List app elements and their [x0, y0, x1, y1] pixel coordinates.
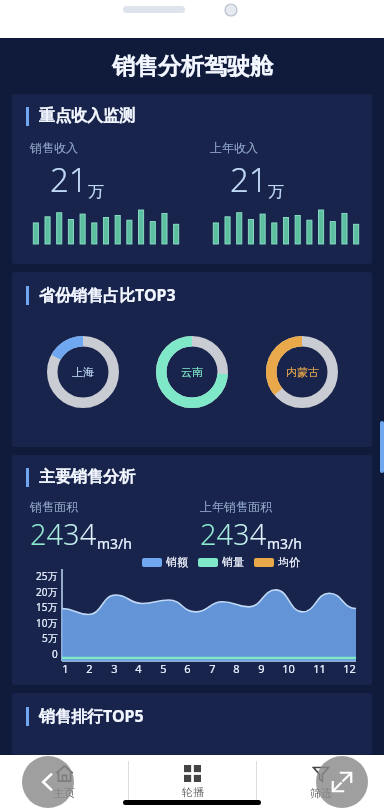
staticText: 21 [50, 157, 88, 202]
staticText: 筛选 [310, 786, 332, 800]
staticText: 万 [268, 182, 284, 202]
staticText: 省份销售占比TOP3 [39, 284, 176, 306]
staticText: 2434 [200, 514, 267, 553]
staticText: 销售排行TOP5 [39, 705, 144, 727]
staticText: 轮播 [182, 785, 204, 799]
button[interactable]: 上海 [44, 333, 122, 411]
staticText: 上年收入 [210, 140, 258, 155]
staticText: 9 [258, 661, 265, 676]
staticText: 上年销售面积 [200, 499, 272, 514]
staticText: 10万 [36, 616, 58, 630]
staticText: 7 [209, 661, 216, 676]
staticText: 内蒙古 [286, 365, 319, 379]
staticText: 15万 [36, 600, 58, 614]
staticText: 6 [184, 661, 191, 676]
staticText: 25万 [36, 569, 58, 583]
staticText: 2 [86, 661, 93, 676]
staticText: 主页 [53, 786, 75, 800]
staticText: m3/h [97, 534, 132, 553]
staticText: 万 [88, 182, 104, 202]
staticText: 11 [313, 661, 326, 676]
button[interactable]: 轮播 [129, 755, 256, 809]
button[interactable]: 省份销售占比TOP3 [12, 272, 372, 447]
button[interactable]: 销售排行TOP5 [12, 693, 372, 755]
button[interactable]: Fullscreen [316, 756, 368, 808]
button[interactable]: 重点收入监测 [12, 94, 372, 264]
button[interactable]: 主要销售分析 [12, 455, 372, 685]
staticText: 10 [282, 661, 295, 676]
staticText: 20万 [36, 585, 58, 599]
staticText: 2434 [30, 514, 97, 553]
staticText: 销售收入 [30, 140, 78, 155]
button[interactable]: 主页 [0, 755, 128, 809]
staticText: 重点收入监测 [39, 106, 135, 126]
button[interactable]: 云南 [153, 333, 231, 411]
staticText: 销售分析驾驶舱 [112, 52, 273, 81]
staticText: 3 [111, 661, 118, 676]
staticText: 5 [160, 661, 167, 676]
button[interactable]: Back [22, 756, 74, 808]
staticText: 12 [343, 661, 356, 676]
staticText: 云南 [181, 365, 203, 379]
staticText: 0 [52, 647, 58, 661]
staticText: 4 [135, 661, 142, 676]
button[interactable]: 筛选 [257, 755, 384, 809]
staticText: 销额 [166, 555, 188, 569]
staticText: 8 [233, 661, 240, 676]
staticText: 21 [230, 157, 268, 202]
staticText: 主要销售分析 [39, 467, 135, 487]
staticText: 5万 [42, 631, 58, 645]
staticText: 1 [62, 661, 69, 676]
staticText: 销售面积 [30, 499, 78, 514]
staticText: m3/h [267, 534, 302, 553]
button[interactable]: 内蒙古 [263, 333, 341, 411]
staticText: 销量 [222, 555, 244, 569]
staticText: 均价 [278, 555, 300, 569]
staticText: 上海 [72, 365, 94, 379]
